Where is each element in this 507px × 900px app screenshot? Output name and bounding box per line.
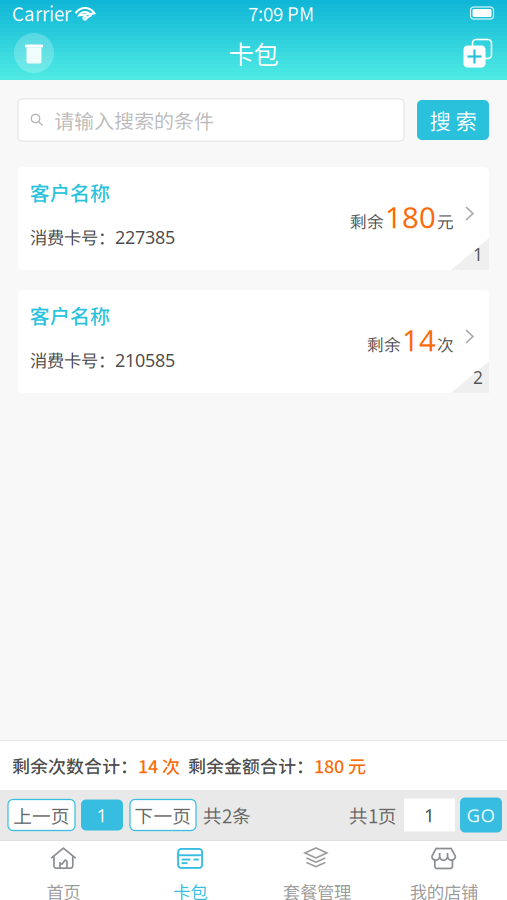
staticText: 消费卡号： [30, 224, 115, 250]
staticText: 卡包 [228, 35, 278, 71]
staticText: 剩余 [350, 209, 384, 233]
staticText: 共2条 [203, 801, 251, 828]
staticText: 套餐管理 [283, 879, 351, 900]
staticText: 剩余次数合计： [12, 752, 138, 779]
button[interactable]: 套餐管理 [253, 841, 380, 900]
staticText: 下一页 [134, 801, 191, 828]
staticText: 上一页 [13, 801, 70, 828]
staticText: 1 [96, 802, 107, 828]
staticText: 2 [473, 365, 483, 389]
staticText: 客户名称 [30, 177, 110, 206]
button[interactable]: Account [14, 33, 54, 73]
staticText: 客户名称 [30, 300, 110, 329]
staticText: 消费卡号： [30, 347, 115, 373]
staticText: 1 [473, 242, 483, 266]
staticText: 227385 [115, 225, 175, 249]
button[interactable]: GO [460, 797, 502, 832]
button[interactable]: 客户名称 [18, 167, 489, 270]
staticText: 7:09 PM [248, 0, 314, 26]
staticText: 搜 索 [429, 105, 476, 135]
button[interactable]: 首页 [0, 841, 127, 900]
button[interactable]: 我的店铺 [380, 841, 507, 900]
button[interactable]: 1 [81, 799, 123, 830]
staticText: 次 [437, 332, 454, 356]
staticText: 210585 [115, 348, 175, 372]
staticText: 元 [437, 209, 454, 233]
button[interactable]: 客户名称 [18, 290, 489, 393]
button[interactable]: Add card [463, 38, 493, 68]
staticText: 请输入搜索的条件 [54, 105, 214, 134]
staticText: 共1页 [349, 801, 397, 828]
staticText: 1 [424, 802, 435, 828]
staticText: Carrier [12, 0, 71, 26]
staticText: 剩余金额合计： [180, 752, 314, 779]
staticText: 我的店铺 [410, 879, 478, 900]
staticText: 180 元 [314, 752, 366, 779]
staticText: GO [466, 802, 495, 828]
button[interactable]: 搜 索 [417, 100, 489, 140]
staticText: 14 次 [138, 752, 180, 779]
staticText: 14 [402, 320, 436, 360]
button[interactable]: 下一页 [130, 799, 196, 830]
staticText: 剩余 [367, 332, 401, 356]
button[interactable]: 上一页 [8, 799, 75, 830]
staticText: 卡包 [173, 879, 207, 900]
staticText: 180 [385, 197, 436, 237]
button[interactable]: 卡包 [127, 841, 254, 900]
staticText: 首页 [46, 879, 80, 900]
